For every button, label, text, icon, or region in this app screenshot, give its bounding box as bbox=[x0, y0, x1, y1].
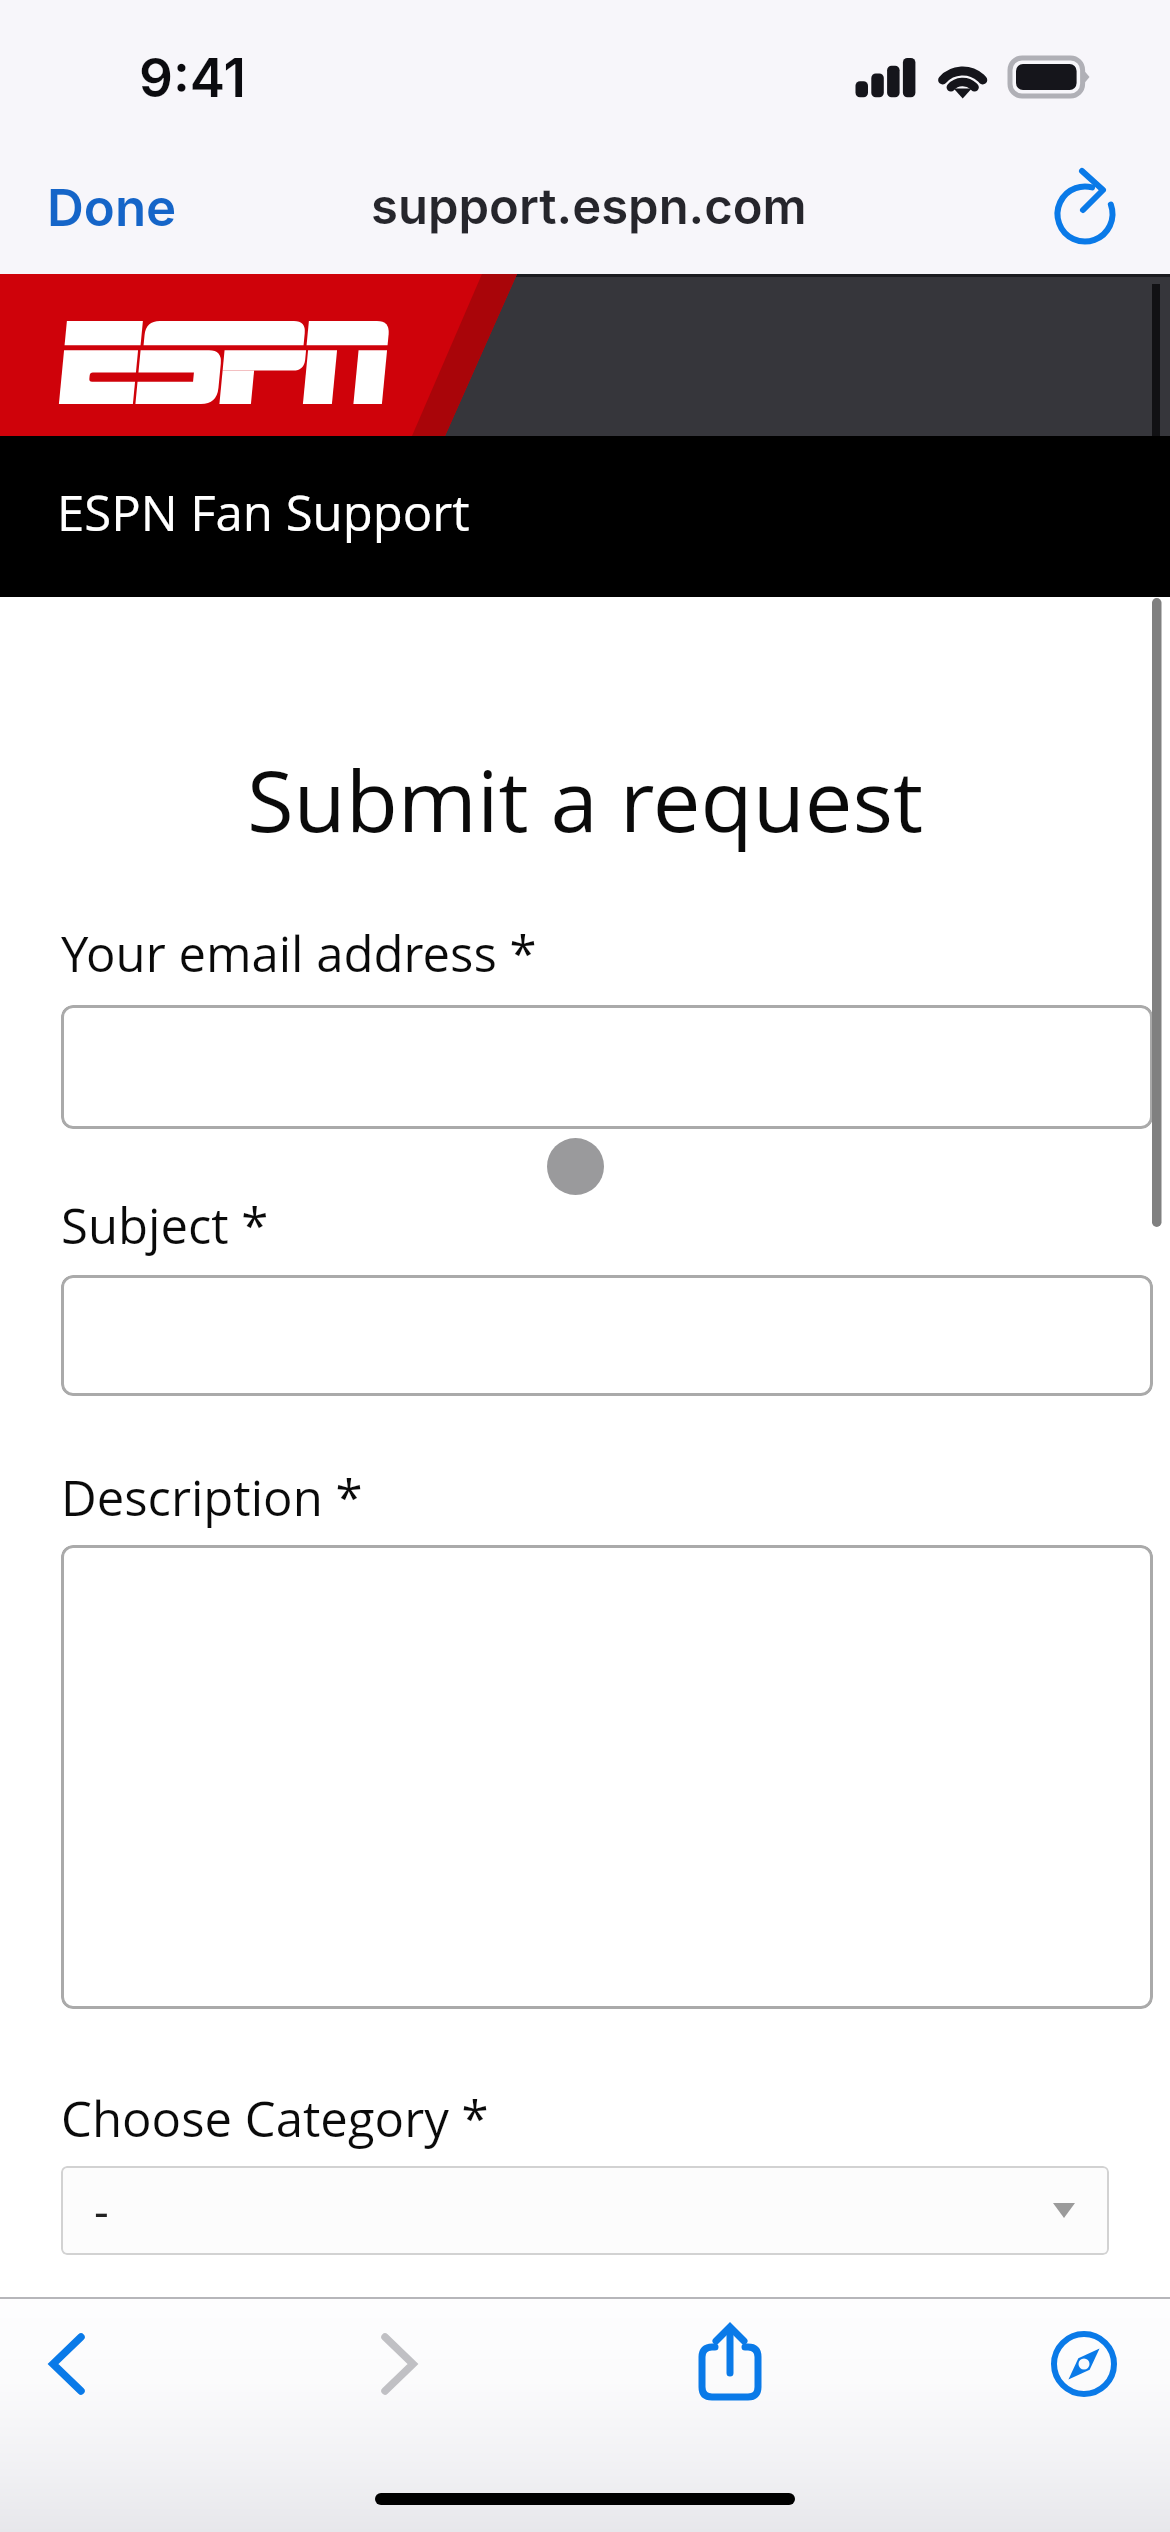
button[interactable]: Back bbox=[0, 2309, 147, 2419]
button[interactable]: support.espn.com bbox=[347, 168, 831, 251]
staticText: Submit a request bbox=[0, 741, 1170, 857]
staticText: ESPN Fan Support bbox=[57, 479, 470, 546]
button[interactable]: Reload bbox=[1030, 155, 1140, 265]
staticText: Done bbox=[47, 177, 177, 239]
button[interactable]: Forward bbox=[319, 2309, 479, 2419]
button[interactable]: Done bbox=[27, 165, 197, 255]
staticText: 9:41 bbox=[139, 46, 246, 110]
staticText: support.espn.com bbox=[371, 177, 807, 236]
staticText: Subject * bbox=[61, 1192, 269, 1259]
button[interactable] bbox=[61, 1545, 1153, 2009]
button[interactable] bbox=[61, 1005, 1153, 1129]
button[interactable]: Share bbox=[650, 2309, 810, 2419]
staticText: Description * bbox=[61, 1464, 363, 1531]
button[interactable]: - bbox=[61, 2166, 1109, 2255]
button[interactable] bbox=[61, 1275, 1153, 1396]
staticText: Choose Category * bbox=[61, 2085, 489, 2152]
button[interactable]: Bookmarks bbox=[1004, 2309, 1164, 2419]
staticText: - bbox=[94, 2179, 109, 2242]
staticText: Your email address * bbox=[61, 920, 537, 987]
